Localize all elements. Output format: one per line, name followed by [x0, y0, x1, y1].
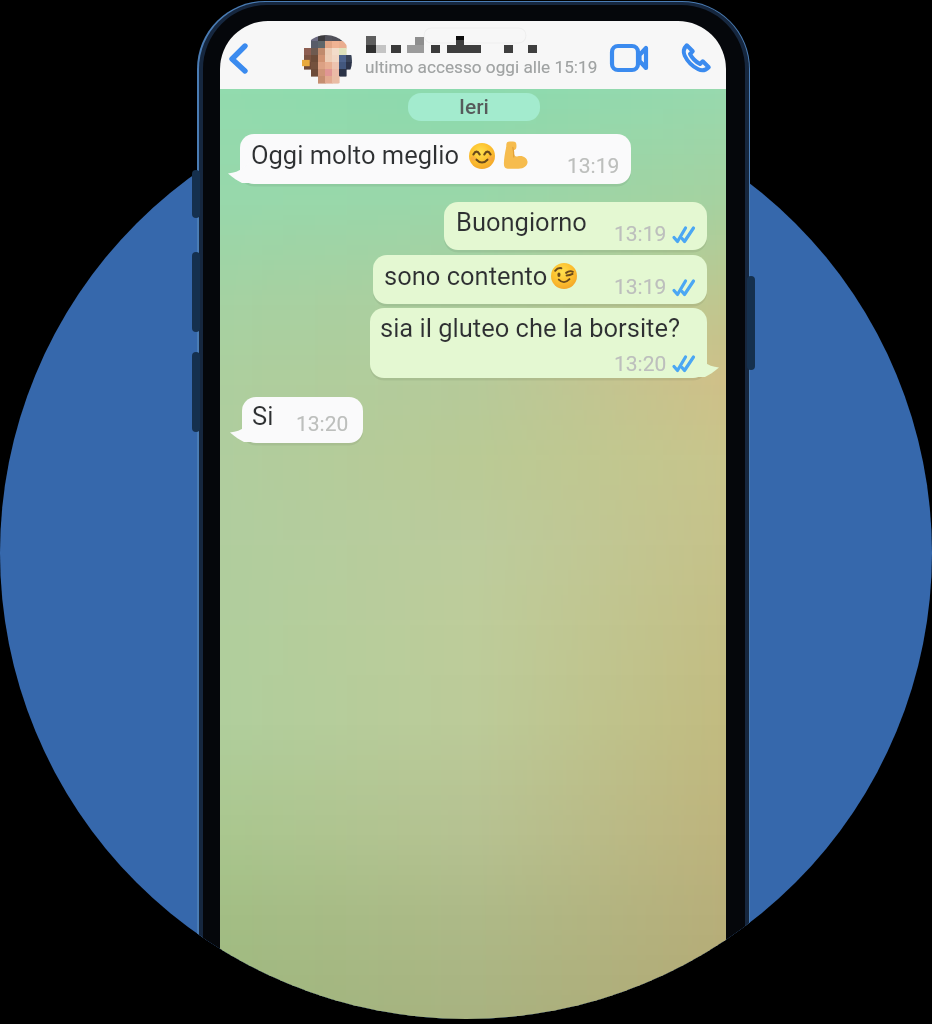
button[interactable]: Contact info [296, 30, 596, 92]
staticText: Oggi molto meglio [251, 140, 459, 170]
button[interactable]: Back [226, 38, 266, 80]
staticText: Buongiorno [456, 207, 587, 237]
staticText: 13:19 [567, 154, 620, 179]
button[interactable]: Ieri [408, 93, 540, 121]
staticText: ultimo accesso oggi alle 15:19 [365, 57, 598, 77]
button[interactable]: Video call [604, 38, 652, 80]
button[interactable]: Voice call [676, 38, 720, 80]
staticText: 13:20 [296, 412, 349, 437]
staticText: Si [252, 401, 274, 431]
staticText: sia il gluteo che la borsite? [380, 313, 681, 343]
staticText: 13:19 [614, 275, 667, 300]
staticText: 13:19 [614, 222, 667, 247]
staticText: sono contento [384, 261, 548, 291]
staticText: Ieri [408, 95, 540, 123]
staticText: 13:20 [614, 352, 667, 377]
